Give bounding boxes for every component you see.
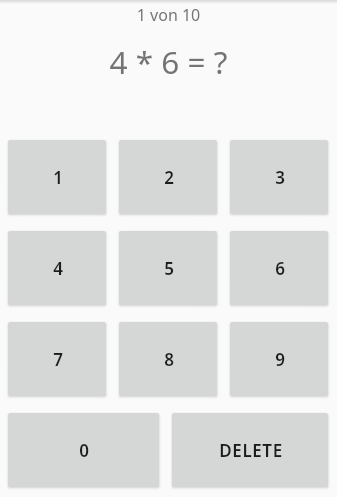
staticText: 4	[53, 257, 64, 280]
button[interactable]: 3	[230, 140, 328, 214]
staticText: 6	[275, 257, 286, 280]
staticText: 5	[164, 257, 175, 280]
staticText: 3	[275, 166, 286, 189]
button[interactable]: 9	[230, 322, 328, 396]
staticText: 0	[79, 439, 90, 462]
button[interactable]: 2	[119, 140, 217, 214]
staticText: 1 von 10	[0, 4, 337, 26]
staticText: 8	[164, 348, 175, 371]
button[interactable]: 7	[8, 322, 106, 396]
button[interactable]: 6	[230, 231, 328, 305]
button[interactable]: 1	[8, 140, 106, 214]
staticText: 1	[53, 166, 64, 189]
button[interactable]: DELETE	[172, 413, 328, 487]
staticText: DELETE	[219, 439, 283, 462]
staticText: 9	[275, 348, 286, 371]
button[interactable]: 5	[119, 231, 217, 305]
staticText: 7	[53, 348, 64, 371]
staticText: 4 * 6 = ?	[0, 40, 337, 83]
button[interactable]: 0	[8, 413, 159, 487]
button[interactable]: 4	[8, 231, 106, 305]
staticText: 2	[164, 166, 175, 189]
button[interactable]: 8	[119, 322, 217, 396]
